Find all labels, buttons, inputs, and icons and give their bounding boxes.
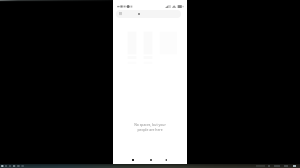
button[interactable]: Recents [128,155,137,164]
button[interactable]: Menu [116,10,181,18]
staticText: people are here [137,127,163,132]
staticText: No spaces, but your [134,122,166,127]
button[interactable]: Back [161,155,170,164]
button[interactable]: Home [146,155,155,164]
